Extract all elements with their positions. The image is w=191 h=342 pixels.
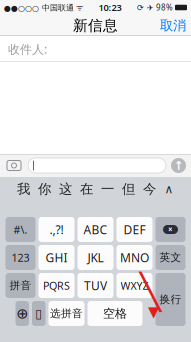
staticText: 这	[59, 181, 72, 197]
staticText: 一	[101, 181, 114, 197]
staticText: ●●○○○ 中国联通 ᯤ	[4, 2, 83, 13]
staticText: 空格	[103, 306, 127, 321]
button[interactable]: 这	[55, 177, 76, 201]
button[interactable]: ABC	[77, 217, 113, 242]
button[interactable]: TUV	[77, 273, 113, 298]
staticText: 英文	[159, 251, 181, 264]
staticText: GHI	[45, 249, 67, 265]
staticText: WXYZ	[120, 278, 148, 293]
button[interactable]: 我	[13, 177, 34, 201]
staticText: 换行	[159, 293, 181, 306]
button[interactable]: Camera	[5, 156, 23, 174]
staticText: ↑	[173, 159, 183, 172]
button[interactable]: 你	[34, 177, 55, 201]
staticText: 在	[80, 181, 93, 197]
button[interactable]: PQRS	[38, 273, 74, 298]
staticText: #\.	[13, 222, 27, 237]
staticText: ×	[168, 224, 173, 235]
staticText: ⟳ ✈ 98%	[137, 2, 173, 13]
staticText: 我	[17, 181, 30, 197]
staticText: 拼音	[9, 279, 31, 292]
button[interactable]: 选拼音	[48, 301, 84, 326]
staticText: .,?!	[49, 221, 63, 237]
button[interactable]: MNO	[116, 245, 152, 270]
staticText: DEF	[123, 221, 145, 237]
button[interactable]: #\.	[5, 217, 35, 242]
staticText: ▯	[35, 307, 42, 320]
staticText: ∧	[164, 182, 173, 196]
button[interactable]: GHI	[38, 245, 74, 270]
button[interactable]: 今	[139, 177, 160, 201]
button[interactable]: 取消	[155, 13, 191, 38]
button[interactable]: 但	[118, 177, 139, 201]
button[interactable]: 在	[76, 177, 97, 201]
staticText: 收件人:	[8, 41, 47, 57]
staticText: MNO	[120, 249, 149, 265]
button[interactable]: Dictation	[32, 301, 45, 326]
staticText: 123	[11, 250, 29, 265]
button[interactable]: WXYZ	[116, 273, 152, 298]
staticText: 选拼音	[50, 307, 83, 320]
staticText: 取消	[160, 17, 186, 34]
button[interactable]: JKL	[77, 245, 113, 270]
button[interactable]: 一	[97, 177, 118, 201]
staticText: 新信息	[73, 16, 118, 34]
button[interactable]: 收件人:	[0, 36, 191, 62]
staticText: ABC	[83, 221, 107, 237]
button[interactable]: 换行	[155, 273, 185, 326]
staticText: 10:23	[98, 1, 121, 14]
staticText: PQRS	[43, 278, 70, 293]
staticText: 今	[143, 181, 156, 197]
staticText: 你	[38, 181, 51, 197]
button[interactable]: Send	[171, 158, 186, 173]
staticText: JKL	[87, 249, 103, 265]
button[interactable]: 英文	[155, 245, 185, 270]
staticText: ▼	[148, 303, 159, 320]
button[interactable]: 123	[5, 245, 35, 270]
button[interactable]: .,?!	[38, 217, 74, 242]
button[interactable]: Switch keyboard	[15, 301, 29, 326]
button[interactable]: 拼音	[5, 273, 35, 298]
button[interactable]: 空格	[87, 301, 142, 326]
staticText: TUV	[84, 277, 107, 293]
button[interactable]: Delete	[155, 217, 185, 242]
button[interactable]: DEF	[116, 217, 152, 242]
staticText: ⊕	[16, 305, 28, 322]
button[interactable]: Expand candidates	[160, 177, 178, 201]
staticText: ╲	[140, 272, 161, 311]
staticText: 但	[122, 181, 135, 197]
